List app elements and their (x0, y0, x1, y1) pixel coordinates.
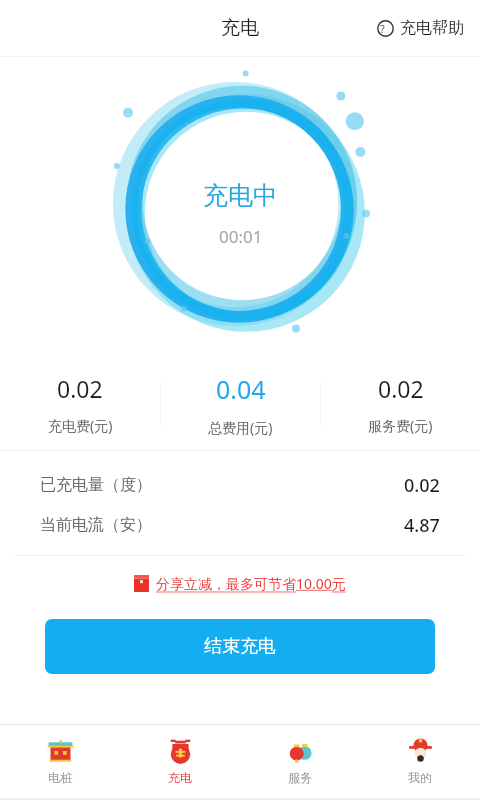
staticText: 充电中 (203, 180, 278, 211)
staticText: 充电 (168, 770, 192, 785)
button[interactable]: 0.02 (0, 358, 160, 450)
button[interactable]: 0.02 (321, 358, 480, 450)
staticText: 4.87 (404, 513, 440, 538)
staticText: 分享立减，最多可节省10.00元 (156, 574, 346, 593)
staticText: 电桩 (48, 770, 72, 785)
button[interactable]: 充电 (120, 725, 240, 798)
staticText: 总费用(元) (208, 418, 273, 437)
staticText: 0.04 (216, 372, 266, 406)
staticText: 0.02 (378, 373, 424, 404)
staticText: 充电帮助 (400, 18, 464, 38)
staticText: 0.02 (404, 473, 440, 498)
button[interactable]: 电桩 (0, 725, 120, 798)
button[interactable]: 当前电流（安） (0, 505, 480, 545)
staticText: 充电费(元) (48, 416, 113, 435)
staticText: 已充电量（度） (40, 475, 152, 495)
staticText: 00:01 (219, 225, 263, 248)
staticText: 结束充电 (204, 635, 276, 658)
staticText: 服务 (288, 770, 312, 785)
button[interactable]: 服务 (240, 725, 360, 798)
staticText: 当前电流（安） (40, 515, 152, 535)
button[interactable]: 分享立减，最多可节省10.00元 (0, 570, 480, 597)
button[interactable]: 0.04 (161, 358, 320, 450)
staticText: ? (380, 21, 385, 36)
staticText: 我的 (408, 770, 432, 785)
button[interactable]: 已充电量（度） (0, 465, 480, 505)
button[interactable]: 充电帮助 (373, 12, 468, 44)
button[interactable]: 结束充电 (45, 619, 435, 674)
staticText: 0.02 (57, 373, 103, 404)
staticText: 服务费(元) (368, 416, 433, 435)
button[interactable]: 我的 (360, 725, 480, 798)
staticText: 充电 (221, 16, 259, 40)
